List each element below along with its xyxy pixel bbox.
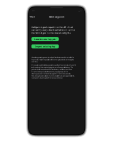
button[interactable]: Back xyxy=(29,15,35,18)
staticText: Back xyxy=(31,15,35,18)
staticText: ▃ ▮ xyxy=(78,10,81,12)
staticText: Import existing key xyxy=(35,45,55,48)
button[interactable]: Import existing key xyxy=(31,44,59,48)
staticText: Generate new key pair xyxy=(34,38,57,40)
staticText: If you already hold a key pair issued by… xyxy=(31,64,76,79)
button[interactable]: Generate new key pair xyxy=(31,37,59,41)
staticText: 9:41 xyxy=(32,9,35,12)
staticText: Edit Agent xyxy=(49,15,64,19)
staticText: A new key pair is generated on this devi… xyxy=(31,56,74,63)
staticText: Configure signed requests so the API cli… xyxy=(31,26,75,34)
